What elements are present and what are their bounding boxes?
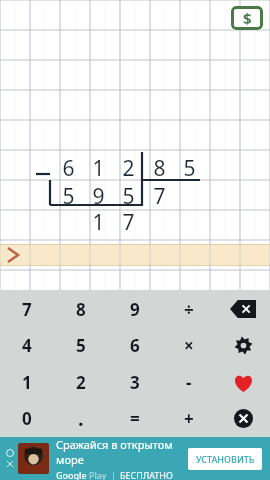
button[interactable]: 6 — [108, 327, 162, 363]
button[interactable]: 9 — [108, 291, 162, 327]
staticText: 8 — [76, 298, 86, 321]
staticText: ÷ — [184, 298, 194, 321]
button[interactable]: 5 — [54, 327, 108, 363]
staticText: 1 — [22, 371, 32, 394]
staticText: 5 — [122, 182, 135, 208]
staticText: - — [186, 371, 192, 394]
button[interactable]: - — [162, 364, 216, 400]
staticText: БЕСПЛАТНО — [120, 469, 173, 480]
staticText: 4 — [22, 334, 32, 357]
staticText: 5 — [76, 334, 86, 357]
staticText: 8 — [153, 154, 166, 180]
button[interactable] — [0, 244, 270, 266]
staticText: = — [130, 407, 140, 430]
staticText: 7 — [22, 298, 32, 321]
button[interactable]: Backspace — [216, 291, 270, 327]
staticText: 5 — [183, 154, 196, 180]
staticText: 7 — [122, 208, 135, 234]
staticText: + — [184, 407, 194, 430]
button[interactable]: × — [162, 327, 216, 363]
button[interactable]: 1 — [0, 364, 54, 400]
staticText: Play — [89, 469, 107, 480]
staticText: 6 — [62, 154, 75, 180]
button[interactable]: ÷ — [162, 291, 216, 327]
staticText: 1 — [92, 154, 105, 180]
staticText: 2 — [76, 371, 86, 394]
button[interactable]: = — [108, 400, 162, 436]
staticText: 9 — [130, 298, 140, 321]
staticText: 5 — [62, 182, 75, 208]
button[interactable]: 8 — [54, 291, 108, 327]
staticText: Сражайся в открытом море — [56, 437, 184, 467]
button[interactable]: 3 — [108, 364, 162, 400]
staticText: 6 — [130, 334, 140, 357]
staticText: × — [184, 334, 194, 357]
button[interactable]: 2 — [54, 364, 108, 400]
button[interactable]: Clear — [216, 400, 270, 436]
button[interactable]: Settings — [216, 327, 270, 363]
staticText: . — [78, 405, 84, 432]
staticText: 1 — [92, 208, 105, 234]
staticText: Google — [56, 469, 87, 480]
button[interactable]: 4 — [0, 327, 54, 363]
staticText: 3 — [130, 371, 140, 394]
staticText: 2 — [122, 154, 135, 180]
staticText: 9 — [92, 182, 105, 208]
staticText: 0 — [22, 407, 32, 430]
staticText: $ — [243, 8, 252, 28]
button[interactable]: + — [162, 400, 216, 436]
button[interactable]: Remove ads — [231, 6, 263, 30]
button[interactable]: Favorite — [216, 364, 270, 400]
button[interactable]: Сражайся в открытом море — [0, 437, 270, 480]
button[interactable]: 0 — [0, 400, 54, 436]
button[interactable]: УСТАНОВИТЬ — [188, 448, 262, 470]
staticText: 7 — [153, 182, 166, 208]
button[interactable]: . — [54, 400, 108, 436]
staticText: | — [111, 469, 116, 480]
staticText: УСТАНОВИТЬ — [196, 453, 255, 465]
button[interactable]: 7 — [0, 291, 54, 327]
